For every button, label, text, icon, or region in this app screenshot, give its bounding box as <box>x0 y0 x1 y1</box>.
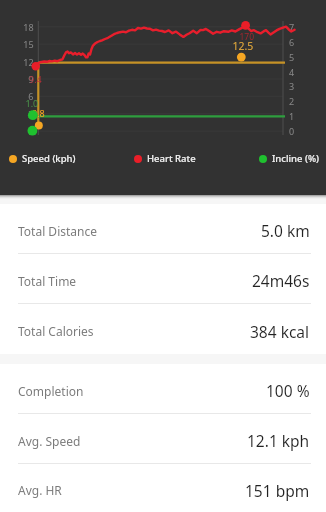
button[interactable]: Incline (%) <box>259 152 320 165</box>
staticText: 24m46s <box>252 270 310 291</box>
button[interactable]: Avg. HR <box>0 464 326 512</box>
staticText: Heart Rate <box>147 152 196 165</box>
staticText: Speed (kph) <box>22 152 76 165</box>
staticText: Avg. Speed <box>18 433 81 449</box>
button[interactable]: Total Distance <box>0 204 326 253</box>
button[interactable]: Speed (kph) <box>9 152 76 165</box>
staticText: 5.0 km <box>261 220 310 241</box>
staticText: Total Time <box>18 273 77 289</box>
staticText: Avg. HR <box>18 482 62 498</box>
staticText: Completion <box>18 383 84 399</box>
staticText: 151 bpm <box>245 480 310 501</box>
button[interactable]: Heart Rate <box>134 152 196 165</box>
button[interactable]: Total Calories <box>0 304 326 354</box>
staticText: 12.1 kph <box>247 430 310 451</box>
staticText: 100 % <box>266 380 310 401</box>
button[interactable]: Completion <box>0 364 326 413</box>
staticText: Total Distance <box>18 223 97 239</box>
staticText: Total Calories <box>18 323 94 339</box>
staticText: 384 kcal <box>250 321 310 342</box>
staticText: Incline (%) <box>272 152 320 165</box>
button[interactable]: Avg. Speed <box>0 414 326 463</box>
button[interactable]: Total Time <box>0 254 326 303</box>
